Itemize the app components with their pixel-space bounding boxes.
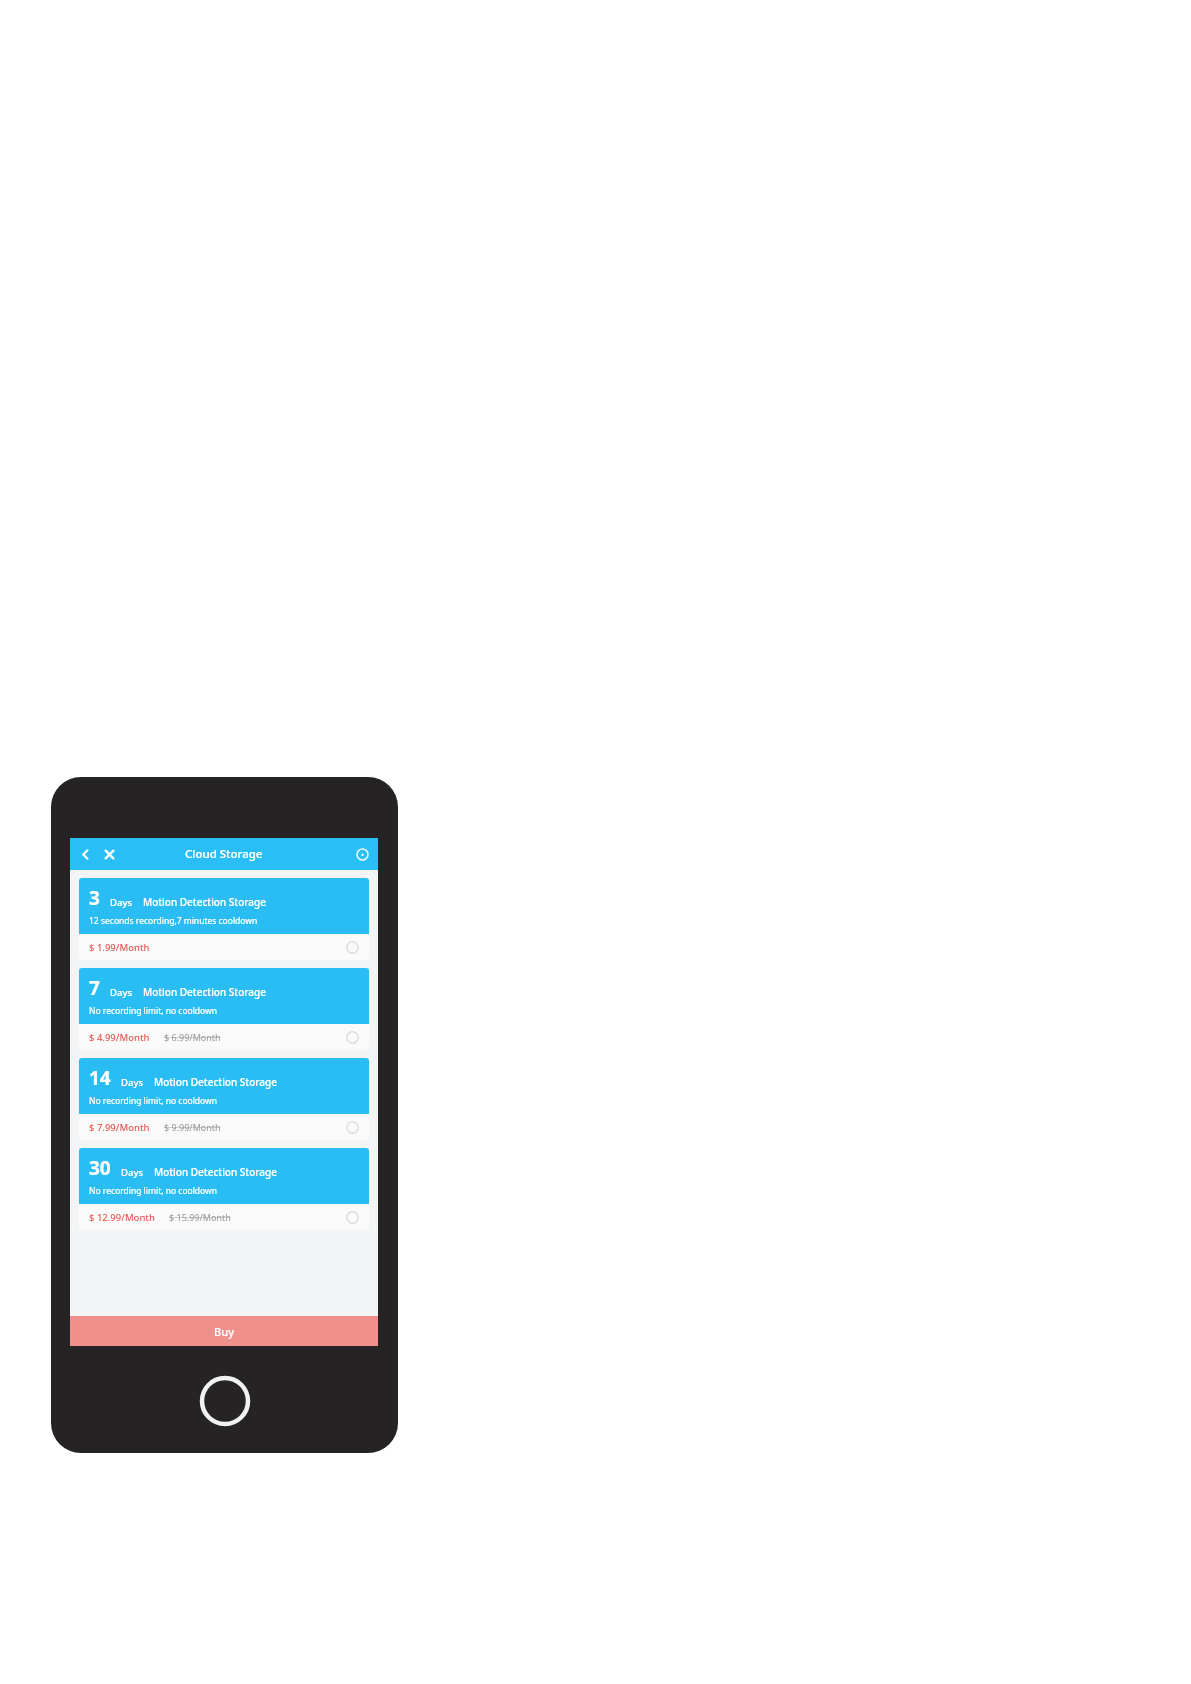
staticText: 12 seconds recording,7 minutes cooldown: [89, 915, 258, 927]
staticText: No recording limit, no cooldown: [89, 1095, 218, 1107]
button[interactable]: Back: [74, 843, 96, 865]
staticText: 14: [89, 1065, 111, 1091]
button[interactable]: Home: [199, 1375, 251, 1427]
staticText: Days: [110, 986, 133, 999]
staticText: 7: [89, 975, 100, 1001]
button[interactable]: Help: [351, 843, 373, 865]
staticText: Motion Detection Storage: [154, 1165, 277, 1179]
staticText: $ 9.99/Month: [164, 1121, 221, 1133]
staticText: $ 6.99/Month: [164, 1031, 221, 1043]
button[interactable]: 3: [79, 878, 369, 960]
staticText: No recording limit, no cooldown: [89, 1005, 218, 1017]
staticText: $ 15.99/Month: [169, 1211, 231, 1223]
button[interactable]: 7: [79, 968, 369, 1050]
button[interactable]: Select plan: [346, 1031, 359, 1044]
button[interactable]: Select plan: [346, 1211, 359, 1224]
staticText: Days: [110, 896, 133, 909]
staticText: Motion Detection Storage: [143, 985, 266, 999]
button[interactable]: Close: [98, 843, 120, 865]
staticText: Cloud Storage: [185, 846, 263, 862]
staticText: $ 12.99/Month: [89, 1211, 155, 1224]
staticText: $ 4.99/Month: [89, 1031, 150, 1044]
staticText: 30: [89, 1155, 111, 1181]
staticText: Days: [121, 1076, 144, 1089]
staticText: No recording limit, no cooldown: [89, 1185, 218, 1197]
staticText: Motion Detection Storage: [143, 895, 266, 909]
staticText: Days: [121, 1166, 144, 1179]
staticText: $ 7.99/Month: [89, 1121, 150, 1134]
button[interactable]: Select plan: [346, 941, 359, 954]
staticText: $ 1.99/Month: [89, 941, 150, 954]
button[interactable]: Buy: [70, 1316, 378, 1346]
button[interactable]: Select plan: [346, 1121, 359, 1134]
staticText: 3: [89, 885, 100, 911]
button[interactable]: 14: [79, 1058, 369, 1140]
staticText: Buy: [214, 1324, 234, 1339]
staticText: Motion Detection Storage: [154, 1075, 277, 1089]
button[interactable]: 30: [79, 1148, 369, 1230]
